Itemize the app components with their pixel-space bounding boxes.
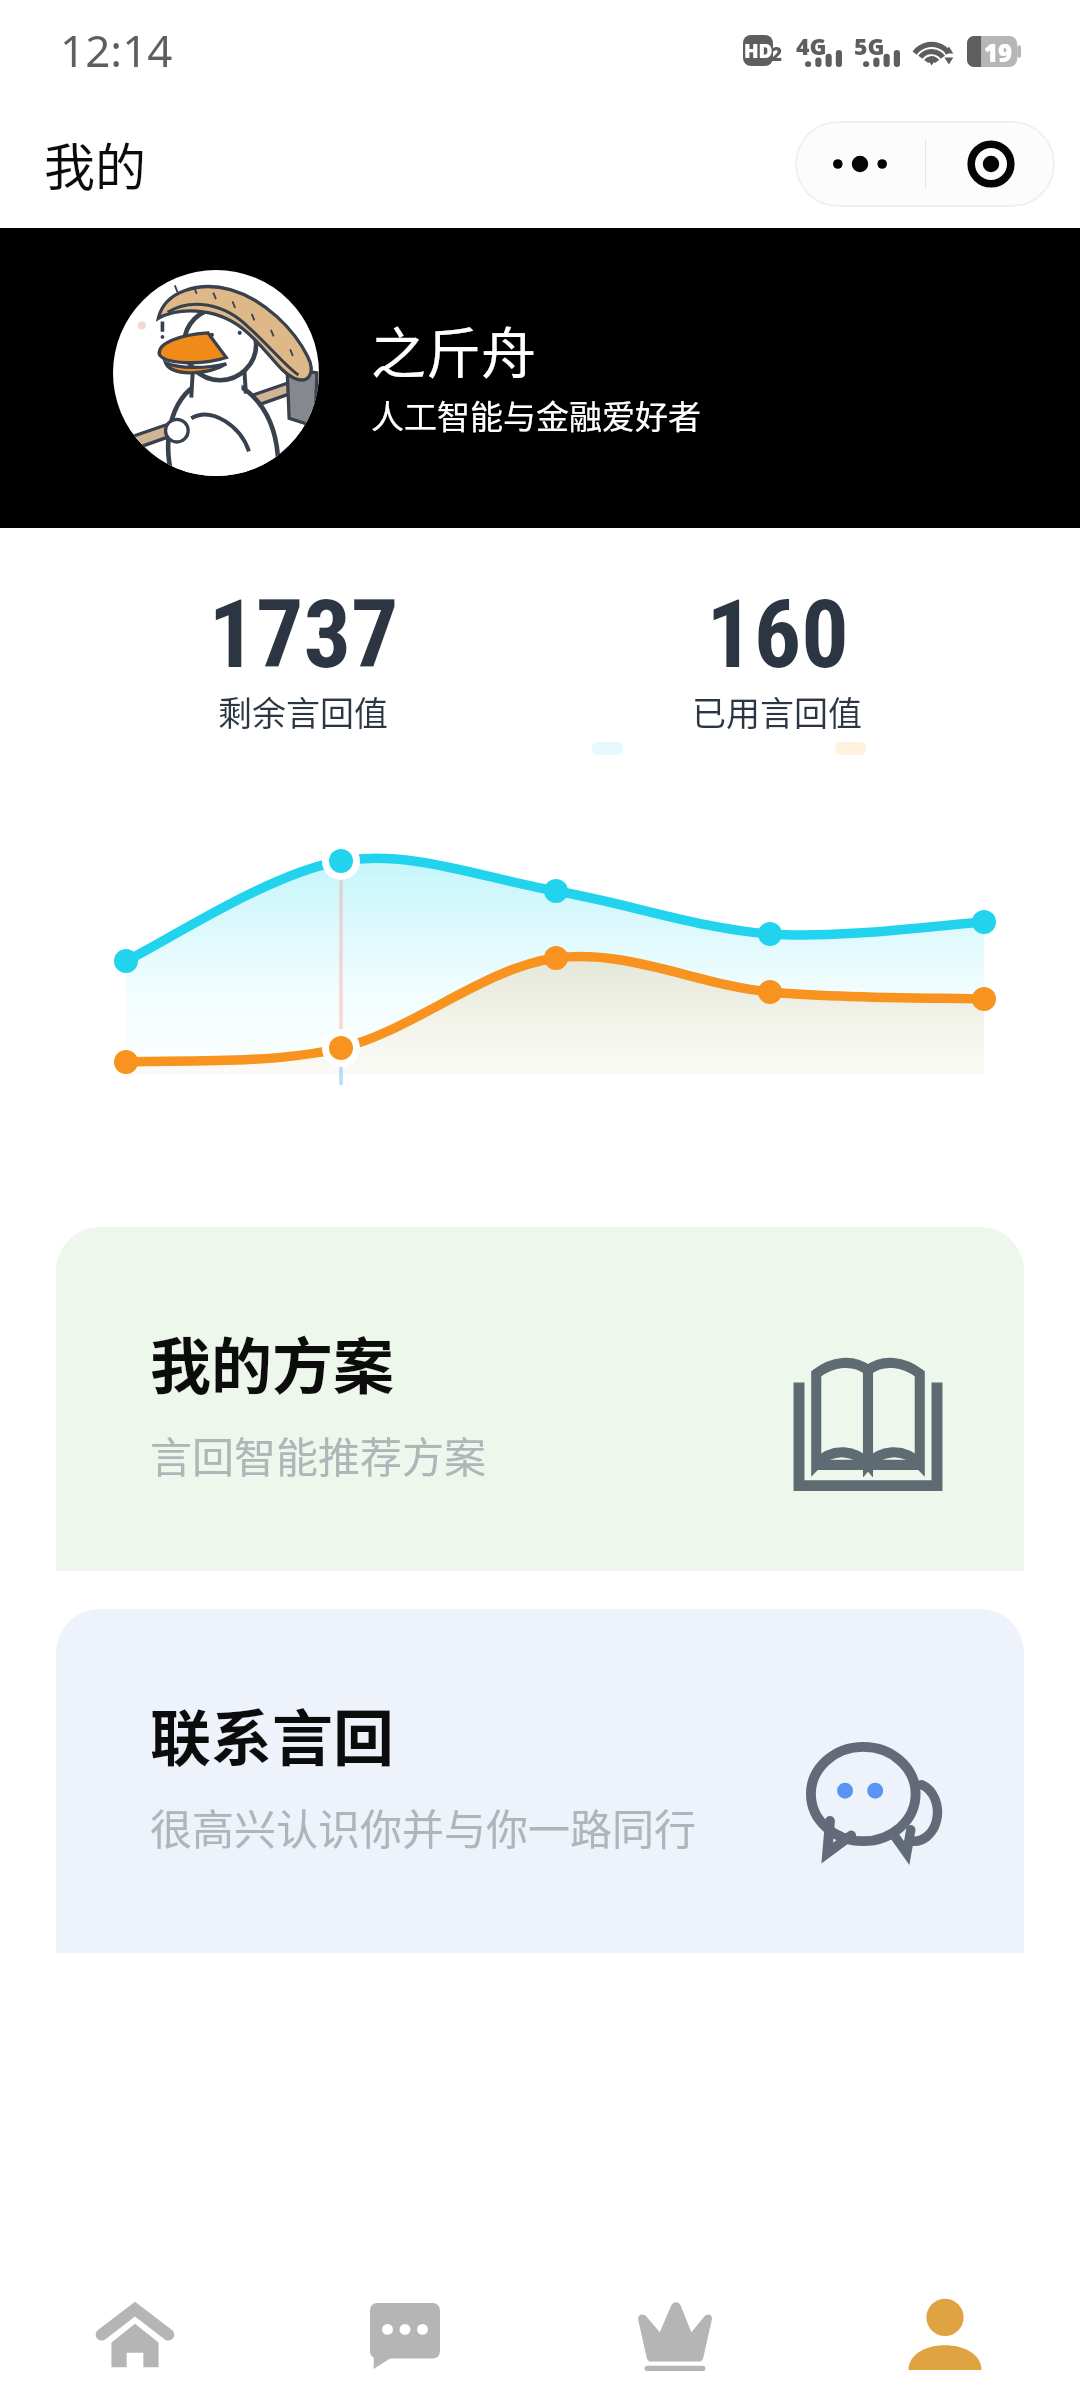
staticText: 言回智能推荐方案 — [150, 1424, 487, 1485]
staticText: 联系言回 — [150, 1690, 395, 1778]
staticText: 2 — [771, 41, 783, 67]
staticText: 5G — [854, 30, 885, 61]
staticText: 19 — [984, 36, 1013, 67]
staticText: 剩余言回值 — [218, 687, 388, 736]
button[interactable]: Profile — [810, 2230, 1080, 2400]
button[interactable]: 之斤舟 — [113, 270, 701, 476]
button[interactable]: 1737 — [66, 580, 540, 739]
staticText: HD — [744, 38, 773, 64]
button[interactable]: More — [795, 121, 1055, 207]
staticText: 160 — [706, 580, 849, 690]
staticText: 12:14 — [60, 20, 173, 80]
button[interactable]: 联系言回 — [56, 1609, 1024, 1953]
staticText: 4G — [796, 30, 827, 61]
button[interactable]: Home — [0, 2230, 270, 2400]
staticText: 我的 — [44, 127, 147, 201]
staticText: 之斤舟 — [371, 309, 537, 389]
staticText: 我的方案 — [150, 1318, 395, 1406]
other: Close mini program — [926, 121, 1055, 207]
staticText: 很高兴认识你并与你一路同行 — [150, 1796, 697, 1857]
staticText: 已用言回值 — [692, 687, 862, 736]
button[interactable]: 我的方案 — [56, 1227, 1024, 1571]
button[interactable]: Messages — [270, 2230, 540, 2400]
staticText: 人工智能与金融爱好者 — [371, 391, 701, 439]
button[interactable]: 160 — [540, 580, 1014, 739]
staticText: 1737 — [208, 580, 399, 690]
button[interactable]: Membership — [540, 2230, 810, 2400]
other: More — [795, 121, 925, 207]
